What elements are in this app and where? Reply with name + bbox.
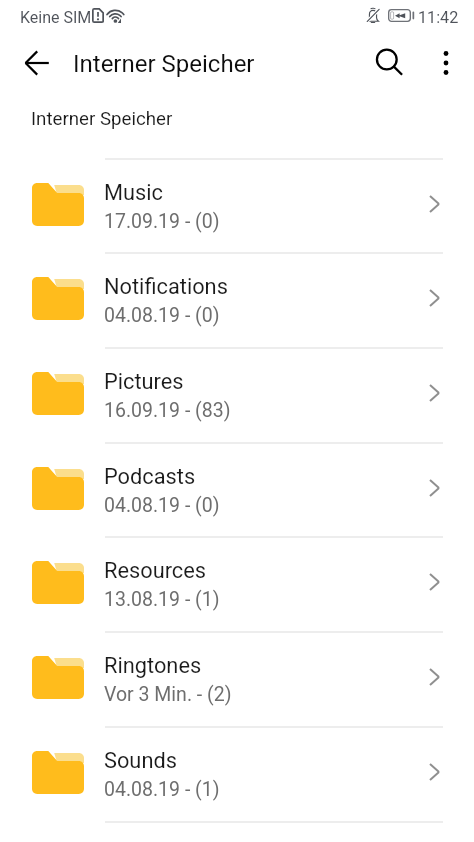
button[interactable]: Back [13,39,61,87]
button[interactable]: Sounds [0,726,474,821]
staticText: Interner Speicher [31,108,173,130]
button[interactable]: Notifications [0,252,474,347]
staticText: Pictures [104,369,184,395]
staticText: 13.08.19 - (1) [104,588,220,611]
button[interactable]: More options [422,39,470,87]
staticText: Ringtones [104,653,202,679]
staticText: Music [104,180,164,206]
staticText: Notifications [104,274,228,300]
button[interactable]: Ringtones [0,631,474,726]
button[interactable]: Pictures [0,347,474,442]
staticText: 04.08.19 - (0) [104,494,220,517]
button[interactable]: Music [0,158,474,253]
button[interactable]: Search [366,39,414,87]
staticText: Resources [104,558,207,584]
staticText: 16.09.19 - (83) [104,399,231,422]
staticText: Sounds [104,748,177,774]
staticText: Interner Speicher [73,50,255,78]
staticText: 17.09.19 - (0) [104,210,220,233]
staticText: 11:42 [418,8,459,27]
staticText: 04.08.19 - (1) [104,778,220,801]
staticText: Keine SIM [20,8,92,27]
staticText: Podcasts [104,464,196,490]
button[interactable]: Resources [0,536,474,631]
button[interactable]: Podcasts [0,442,474,537]
staticText: 04.08.19 - (0) [104,304,220,327]
staticText: Vor 3 Min. - (2) [104,683,232,706]
